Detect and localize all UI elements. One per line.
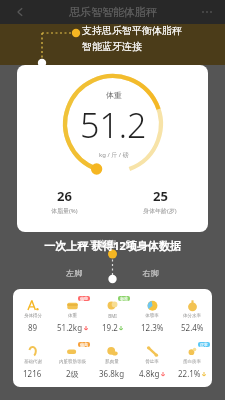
staticText: 思乐智智能体脂秤 [69,5,157,19]
staticText: 51.2kg [57,322,83,333]
staticText: 平衡值：66 [0,237,225,249]
button[interactable]: 标准 [92,295,132,335]
staticText: 89 [28,322,38,333]
button[interactable]: 偏高 [52,341,92,381]
staticText: 19.2 [102,322,118,333]
button[interactable]: 26 [17,187,112,215]
staticText: 智能蓝牙连接 [82,40,142,53]
staticText: 骨盐率 [145,359,159,365]
staticText: 一次上秤 获得12项身体数据 [0,238,225,253]
button[interactable]: 体分水率 [172,295,212,335]
staticText: BMI [108,313,117,319]
staticText: 体脂量(%) [51,207,78,215]
staticText: 正常 [200,342,208,347]
button[interactable]: 体脂率 [132,295,172,335]
staticText: 26 [57,187,72,205]
staticText: 标准 [120,296,128,301]
staticText: 51.2 [80,102,147,148]
button[interactable]: 体重 [17,65,208,232]
staticText: 基础代谢 [24,359,42,365]
staticText: 22.1% [178,368,201,379]
button[interactable]: 正常 [172,341,212,381]
staticText: 偏高 [80,342,88,347]
button[interactable]: 基础代谢 [13,341,52,381]
button[interactable]: 偏瘦 [52,295,92,335]
staticText: 内脏脂肪等级 [59,359,86,365]
staticText: 蛋白质率 [183,359,201,365]
staticText: 36.8kg [99,368,125,379]
staticText: 12.3% [141,322,164,333]
staticText: 右脚 [112,268,189,278]
staticText: 25 [153,187,168,205]
staticText: 体脂率 [145,313,159,319]
staticText: 身体年龄(岁) [143,207,177,215]
staticText: 52.4% [181,322,204,333]
staticText: 2级 [66,368,79,379]
staticText: 左脚 [36,268,112,278]
staticText: 4.8kg [139,368,160,379]
button[interactable]: More options [195,0,219,24]
staticText: kg / 斤 / 磅 [99,151,129,159]
staticText: 体重 [106,90,122,100]
button[interactable]: 肌肉量 [92,341,132,381]
staticText: 支持思乐智平衡体脂秤 [82,24,182,37]
button[interactable]: 骨盐率 [132,341,172,381]
staticText: 偏瘦 [80,296,88,301]
staticText: 肌肉量 [105,359,119,365]
staticText: 体分水率 [183,313,201,319]
button[interactable]: 25 [112,187,208,215]
staticText: 1216 [23,368,42,379]
button[interactable]: Back [8,0,32,24]
button[interactable]: 身体得分 [13,295,52,335]
staticText: 身体得分 [24,313,42,319]
staticText: 体重 [68,313,77,319]
